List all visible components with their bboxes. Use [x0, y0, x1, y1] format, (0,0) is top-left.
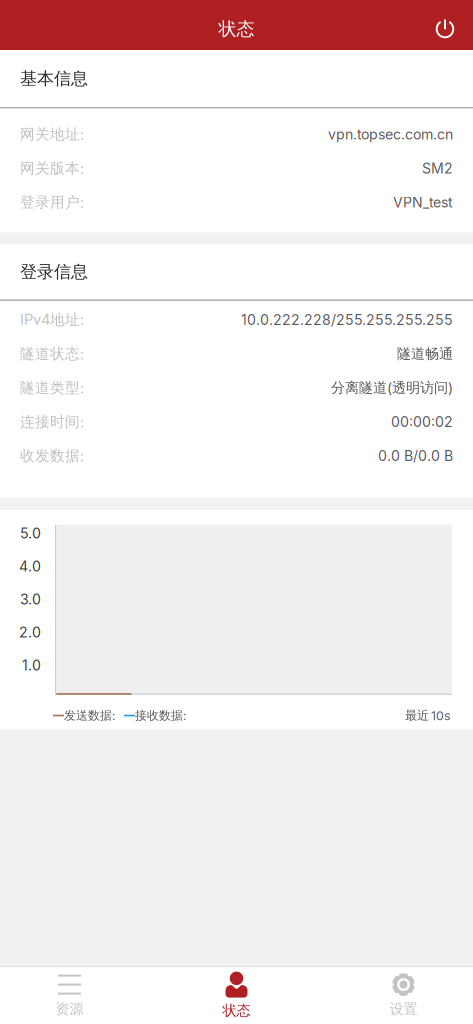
staticText: 发送数据:	[64, 708, 115, 723]
staticText: 分离隧道(透明访问)	[331, 379, 453, 397]
button[interactable]: 设置	[334, 967, 473, 1024]
staticText: 3.0	[20, 591, 41, 608]
staticText: 4.0	[19, 558, 41, 575]
staticText: 设置	[389, 1000, 417, 1018]
staticText: 隧道类型:	[20, 379, 84, 397]
staticText: 2.0	[19, 624, 41, 641]
staticText: VPN_test	[393, 194, 453, 211]
staticText: 连接时间:	[20, 413, 84, 431]
staticText: 登录用户:	[20, 193, 84, 212]
staticText: 0.0 B/0.0 B	[378, 447, 453, 464]
staticText: 隧道畅通	[397, 345, 453, 363]
staticText: 最近 10s	[405, 708, 450, 723]
staticText: 状态	[222, 1002, 250, 1019]
staticText: 网关地址:	[20, 125, 84, 144]
staticText: 登录信息	[20, 261, 88, 283]
staticText: 隧道状态:	[20, 345, 84, 363]
staticText: SM2	[422, 160, 453, 177]
staticText: 状态	[218, 18, 254, 40]
button[interactable]: 资源	[0, 967, 139, 1024]
staticText: vpn.topsec.com.cn	[328, 126, 453, 143]
button[interactable]: 状态	[139, 967, 334, 1024]
staticText: 1.0	[22, 657, 41, 674]
staticText: 接收数据:	[135, 708, 186, 723]
staticText: 00:00:02	[391, 413, 453, 430]
staticText: IPv4地址:	[20, 310, 84, 329]
staticText: 5.0	[20, 525, 41, 542]
staticText: 网关版本:	[20, 159, 84, 178]
button[interactable]: Disconnect	[434, 17, 473, 41]
staticText: 资源	[55, 1000, 83, 1018]
staticText: 10.0.222.228/255.255.255.255	[241, 311, 453, 328]
staticText: 基本信息	[20, 68, 88, 89]
staticText: 收发数据:	[20, 447, 84, 465]
